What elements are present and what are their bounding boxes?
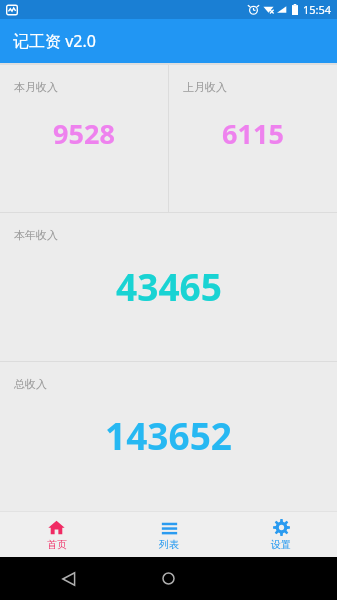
button[interactable]: 首页 [0, 512, 113, 557]
staticText: 首页 [47, 538, 67, 551]
button[interactable]: 上月收入 [169, 65, 337, 212]
staticText: 143652 [105, 410, 232, 460]
staticText: 上月收入 [183, 80, 227, 94]
button[interactable]: 本年收入 [0, 213, 337, 361]
button[interactable]: 本月收入 [0, 65, 168, 212]
button[interactable]: 设置 [225, 512, 337, 557]
staticText: 列表 [159, 538, 179, 551]
button[interactable]: 列表 [113, 512, 225, 557]
staticText: 15:54 [303, 2, 332, 17]
staticText: 本月收入 [14, 80, 58, 94]
button[interactable]: Home [162, 572, 175, 585]
button[interactable]: 总收入 [0, 362, 337, 496]
staticText: 总收入 [14, 377, 47, 391]
staticText: 本年收入 [14, 228, 58, 242]
staticText: 43465 [116, 261, 222, 311]
button[interactable]: Back [62, 572, 76, 586]
staticText: 6115 [222, 115, 284, 152]
staticText: 设置 [271, 538, 291, 551]
staticText: 记工资 v2.0 [13, 30, 96, 52]
staticText: 9528 [53, 115, 115, 152]
